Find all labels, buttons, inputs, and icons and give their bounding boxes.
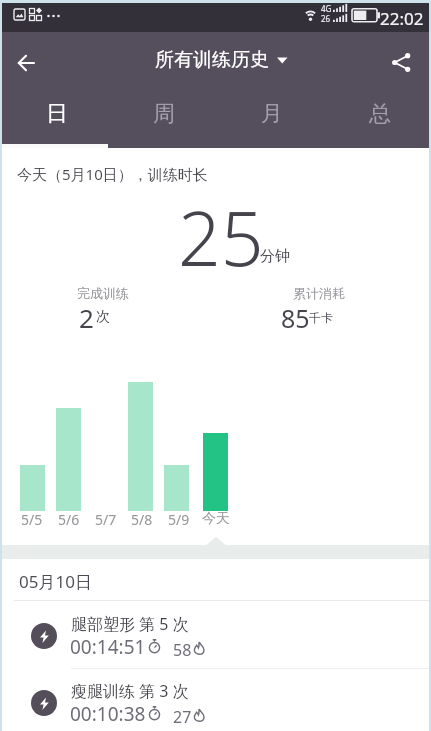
staticText: 5/9 [168, 510, 190, 529]
button[interactable]: 瘦腿训练 第 3 次 [0, 668, 431, 731]
staticText: 次 [96, 308, 110, 326]
staticText: 腿部塑形 第 5 次 [71, 613, 189, 635]
button[interactable] [384, 47, 418, 79]
staticText: 月 [261, 100, 283, 128]
staticText: 4G [321, 3, 332, 14]
staticText: 所有训练历史 [155, 48, 269, 72]
button[interactable]: 月 [215, 90, 323, 148]
staticText: 2 [79, 300, 94, 335]
button[interactable]: 周 [107, 90, 215, 148]
button[interactable]: 腿部塑形 第 5 次 [0, 601, 431, 668]
staticText: 完成训练 [77, 285, 129, 301]
staticText: 5/8 [131, 510, 153, 529]
button[interactable] [10, 47, 44, 79]
staticText: 今天 [202, 510, 230, 528]
staticText: 85 [281, 301, 310, 335]
staticText: 总 [369, 100, 391, 128]
staticText: 00:10:38 [70, 701, 146, 727]
button[interactable]: 日 [0, 90, 107, 148]
staticText: 27 [173, 706, 192, 728]
staticText: 5/5 [21, 510, 43, 529]
staticText: 25 [178, 186, 264, 288]
staticText: 今天（5月10日），训练时长 [17, 164, 208, 184]
staticText: 00:14:51 [70, 634, 146, 660]
staticText: 日 [46, 100, 68, 128]
staticText: 周 [153, 100, 175, 128]
staticText: 26 [321, 13, 331, 24]
staticText: 千卡 [309, 310, 333, 325]
staticText: 分钟 [260, 247, 290, 266]
staticText: 58 [173, 639, 192, 661]
staticText: 22:02 [380, 7, 424, 30]
staticText: 05月10日 [19, 570, 92, 593]
staticText: 5/6 [58, 510, 80, 529]
button[interactable] [150, 42, 295, 80]
staticText: 瘦腿训练 第 3 次 [71, 680, 189, 702]
staticText: 累计消耗 [293, 285, 345, 301]
staticText: 5/7 [95, 510, 117, 529]
button[interactable]: 总 [323, 90, 431, 148]
